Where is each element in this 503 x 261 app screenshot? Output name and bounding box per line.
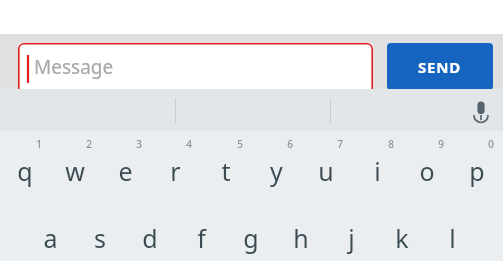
- staticText: Message: [34, 54, 114, 80]
- button[interactable]: 7: [301, 131, 351, 195]
- staticText: j: [348, 221, 355, 255]
- staticText: l: [449, 221, 456, 255]
- button[interactable]: s: [75, 205, 125, 261]
- staticText: u: [318, 154, 334, 188]
- staticText: k: [395, 221, 409, 255]
- staticText: h: [293, 221, 309, 255]
- button[interactable]: 1: [0, 131, 50, 195]
- button[interactable]: d: [125, 205, 175, 261]
- staticText: SEND: [418, 57, 462, 77]
- button[interactable]: 9: [402, 131, 452, 195]
- button[interactable]: h: [276, 205, 326, 261]
- staticText: d: [142, 221, 158, 255]
- staticText: f: [197, 221, 206, 255]
- button[interactable]: 3: [100, 131, 150, 195]
- staticText: 7: [337, 137, 343, 151]
- staticText: 9: [438, 137, 444, 151]
- staticText: i: [374, 154, 381, 188]
- button[interactable]: Voice input: [462, 91, 500, 129]
- staticText: a: [43, 221, 58, 255]
- button[interactable]: k: [377, 205, 427, 261]
- staticText: 0: [488, 137, 494, 151]
- staticText: w: [65, 154, 85, 188]
- staticText: 8: [388, 137, 394, 151]
- button[interactable]: f: [176, 205, 226, 261]
- button[interactable]: 0: [452, 131, 502, 195]
- button[interactable]: 4: [150, 131, 200, 195]
- staticText: e: [118, 154, 133, 188]
- staticText: t: [221, 154, 231, 188]
- staticText: g: [243, 221, 259, 255]
- button[interactable]: Message: [18, 43, 373, 95]
- staticText: r: [170, 154, 181, 188]
- button[interactable]: 6: [251, 131, 301, 195]
- staticText: o: [419, 154, 435, 188]
- staticText: 3: [136, 137, 142, 151]
- staticText: y: [270, 154, 283, 188]
- staticText: q: [17, 154, 33, 188]
- staticText: 4: [186, 137, 192, 151]
- button[interactable]: SEND: [387, 43, 493, 90]
- button[interactable]: j: [326, 205, 376, 261]
- staticText: 5: [237, 137, 243, 151]
- staticText: 6: [287, 137, 293, 151]
- staticText: p: [469, 154, 485, 188]
- button[interactable]: 2: [50, 131, 100, 195]
- button[interactable]: l: [427, 205, 477, 261]
- button[interactable]: 5: [201, 131, 251, 195]
- staticText: s: [94, 221, 106, 255]
- button[interactable]: a: [25, 205, 75, 261]
- staticText: 1: [36, 137, 42, 151]
- staticText: 2: [86, 137, 92, 151]
- button[interactable]: g: [226, 205, 276, 261]
- button[interactable]: 8: [352, 131, 402, 195]
